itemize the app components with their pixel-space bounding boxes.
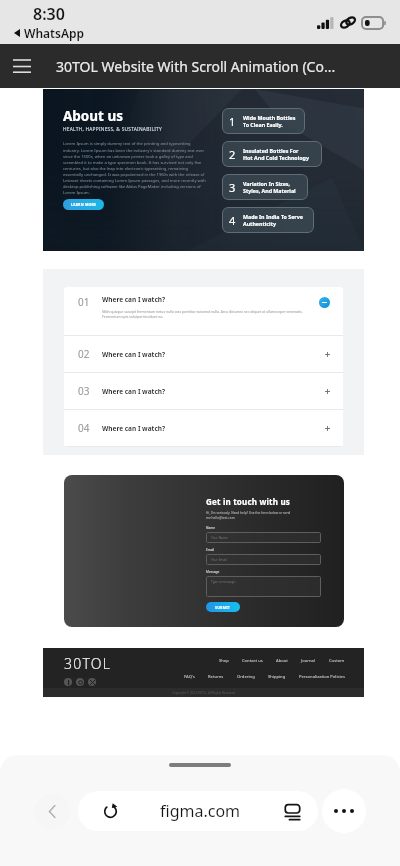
button[interactable]: Shipping	[268, 674, 286, 680]
staticText: Made In India To Serve Authenticity	[243, 213, 303, 227]
staticText: Where can I watch?	[102, 295, 166, 304]
button[interactable]: Custom	[329, 658, 345, 664]
staticText: 4	[229, 213, 236, 228]
button[interactable]: 2	[222, 141, 322, 167]
button[interactable]: Shop	[219, 658, 229, 664]
staticText: Message	[206, 570, 220, 574]
staticText: About us	[63, 107, 124, 125]
staticText: FAQ's	[184, 674, 195, 680]
staticText: figma.com	[160, 800, 241, 822]
button[interactable]: SUBMIT	[206, 602, 240, 612]
staticText: 30TOL Website With Scroll Animation (Co.…	[56, 57, 336, 76]
staticText: 30TOL	[64, 654, 112, 673]
staticText: Custom	[329, 658, 345, 664]
staticText: Copyright © 2023 30TOL. All Rights Reser…	[172, 691, 235, 695]
button[interactable]: Social link	[76, 678, 84, 686]
staticText: Where can I watch?	[102, 350, 166, 359]
button[interactable]: Contact us	[242, 658, 263, 664]
staticText: 01	[78, 295, 90, 309]
staticText: Name	[206, 526, 215, 530]
staticText: 1	[229, 114, 236, 129]
staticText: 8:30	[33, 3, 65, 25]
button[interactable]: About	[276, 658, 288, 664]
staticText: 02	[78, 347, 90, 361]
button[interactable]: 04	[64, 410, 343, 447]
button[interactable]: 01	[64, 287, 343, 336]
button[interactable]: Menu	[0, 44, 44, 88]
staticText: HEALTH, HAPPINESS, & SUSTAINABILITY	[63, 126, 162, 133]
staticText: Where can I watch?	[102, 387, 166, 396]
staticText: Your Email	[211, 558, 227, 562]
staticText: Personalization Policies	[299, 674, 345, 680]
button[interactable]: 03	[64, 373, 343, 410]
staticText: Variation In Sizes, Styles, And Material	[243, 180, 296, 194]
staticText: Returns	[208, 674, 224, 680]
button[interactable]: 02	[64, 336, 343, 373]
button[interactable]: LEARN MORE	[63, 199, 104, 210]
staticText: Journal	[301, 658, 316, 664]
staticText: 3	[229, 180, 236, 195]
staticText: About	[276, 658, 288, 664]
button[interactable]: Social link	[64, 678, 72, 686]
button[interactable]: Social link	[88, 678, 96, 686]
staticText: Your Name	[211, 536, 228, 540]
staticText: Get in touch with us	[206, 496, 291, 507]
staticText: Ordering	[237, 674, 255, 680]
staticText: 03	[78, 384, 90, 398]
button[interactable]: Reload	[78, 791, 318, 831]
staticText: 04	[78, 421, 90, 435]
button[interactable]: Back	[34, 793, 71, 830]
staticText: Where can I watch?	[102, 424, 166, 433]
button[interactable]: Ordering	[237, 674, 255, 680]
staticText: Shop	[219, 658, 229, 664]
button[interactable]: 4	[222, 207, 314, 233]
staticText: Nibh quisque suscipit fermentum netus nu…	[102, 309, 313, 319]
other: Tabs	[283, 802, 302, 821]
staticText: SUBMIT	[215, 605, 231, 610]
button[interactable]: Returns	[208, 674, 224, 680]
staticText: Email	[206, 548, 215, 552]
staticText: Wide Mouth Bottles To Clean Easily.	[243, 114, 296, 128]
staticText: Shipping	[268, 674, 286, 680]
button[interactable]: Journal	[301, 658, 316, 664]
staticText: WhatsApp	[24, 25, 84, 41]
staticText: 2	[229, 147, 236, 162]
button[interactable]: FAQ's	[184, 674, 195, 680]
button[interactable]: Personalization Policies	[299, 674, 345, 680]
staticText: Contact us	[242, 658, 263, 664]
button[interactable]: More options	[322, 789, 366, 833]
button[interactable]: 1	[222, 108, 305, 134]
button[interactable]: 3	[222, 174, 308, 200]
staticText: Hi, I'm seriously. Need help? Use the fo…	[206, 511, 293, 520]
staticText: Type a message...	[211, 580, 238, 584]
staticText: LEARN MORE	[71, 202, 97, 207]
staticText: Insulated Bottles For Hot And Cold Techn…	[243, 147, 309, 161]
other: Reload	[102, 803, 119, 820]
staticText: Lorem Ipsum is simply dummy text of the …	[63, 141, 207, 195]
